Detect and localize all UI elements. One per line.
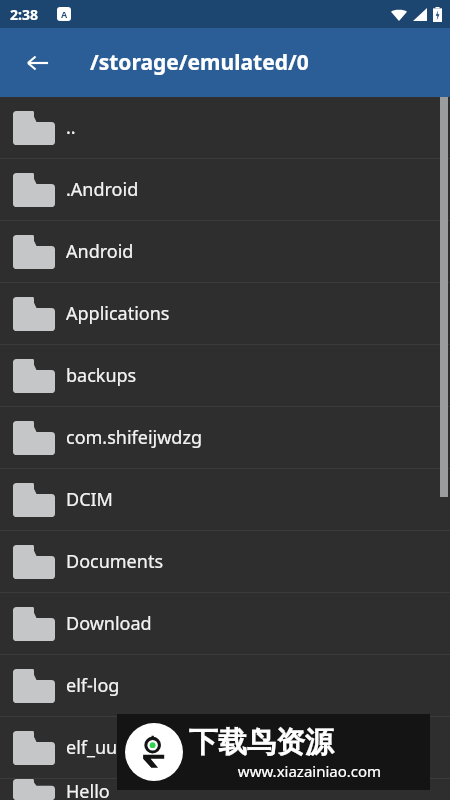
button[interactable]: com.shifeijwdzg (0, 407, 450, 468)
button[interactable]: Back (16, 41, 60, 85)
staticText: www.xiazainiao.com (189, 761, 430, 781)
staticText: backups (66, 363, 137, 388)
staticText: elf-log (66, 673, 120, 698)
button[interactable]: Android (0, 221, 450, 282)
staticText: .Android (66, 177, 139, 202)
staticText: DCIM (66, 487, 113, 512)
staticText: 下载鸟资源 (189, 724, 334, 761)
staticText: elf_uu (66, 735, 118, 760)
staticText: Applications (66, 301, 170, 326)
staticText: A (61, 8, 68, 20)
staticText: Android (66, 239, 134, 264)
staticText: .. (66, 115, 76, 140)
button[interactable]: backups (0, 345, 450, 406)
button[interactable]: Hello (0, 779, 450, 800)
button[interactable]: DCIM (0, 469, 450, 530)
button[interactable]: elf-log (0, 655, 450, 716)
staticText: com.shifeijwdzg (66, 425, 202, 450)
staticText: /storage/emulated/0 (90, 48, 309, 77)
button[interactable]: .. (0, 97, 450, 158)
button[interactable]: elf_uu (0, 717, 450, 778)
staticText: Download (66, 611, 152, 636)
staticText: Hello (66, 779, 110, 800)
button[interactable]: Applications (0, 283, 450, 344)
staticText: Documents (66, 549, 164, 574)
button[interactable]: Documents (0, 531, 450, 592)
button[interactable]: .Android (0, 159, 450, 220)
button[interactable]: Download (0, 593, 450, 654)
staticText: 2:38 (10, 5, 38, 24)
